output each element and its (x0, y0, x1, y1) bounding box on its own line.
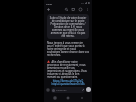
button[interactable]: Image (70, 6, 77, 13)
staticText: Demande (56, 89, 67, 92)
staticText: Nous tenons à vous remercier pour l'inté… (47, 41, 89, 56)
button[interactable]: Voice input (86, 87, 91, 92)
staticText: 16:41 (46, 2, 53, 5)
button[interactable]: Demande (51, 87, 85, 93)
button[interactable]: Back (79, 95, 85, 101)
button[interactable]: More options (84, 6, 91, 13)
button[interactable]: Account (77, 6, 84, 13)
staticText: Suite a l'étude de votre dossier de cand… (49, 16, 87, 37)
button[interactable]: https://forms.gle/7Ky2xQ (47, 79, 89, 82)
button[interactable]: Home (65, 95, 71, 101)
button[interactable]: Suite a l'étude de votre dossier de cand… (47, 14, 89, 39)
button[interactable]: Search (63, 6, 70, 13)
button[interactable]: Recent apps (52, 95, 58, 101)
button[interactable]: New chat (45, 6, 52, 13)
button[interactable]: Attach file (45, 87, 50, 92)
staticText: Afin d'améliorer notre processus de recr… (47, 60, 89, 78)
staticText: 4G (81, 2, 84, 5)
button[interactable]: https://questionnaire.fr/x9k (47, 82, 89, 85)
